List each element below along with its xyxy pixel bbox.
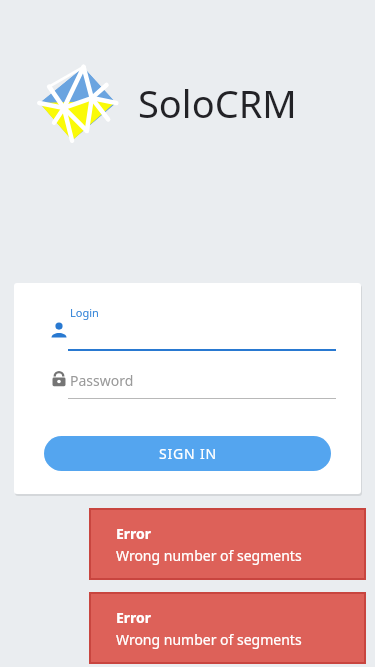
button[interactable]: Login: [14, 297, 361, 353]
other: Login: [50, 321, 68, 339]
staticText: Wrong number of segments: [116, 546, 302, 565]
staticText: SIGN IN: [159, 444, 217, 463]
button[interactable]: SIGN IN: [44, 436, 331, 471]
button[interactable]: Password: [14, 363, 361, 405]
staticText: Password: [70, 371, 134, 390]
button[interactable]: Error: [91, 594, 364, 662]
staticText: Error: [116, 608, 152, 627]
staticText: SoloCRM: [138, 77, 297, 129]
staticText: Error: [116, 524, 152, 543]
staticText: Login: [70, 305, 99, 320]
button[interactable]: Error: [91, 510, 364, 578]
other: SoloCRM logo: [36, 62, 118, 144]
other: Password: [50, 370, 68, 388]
staticText: Wrong number of segments: [116, 630, 302, 649]
